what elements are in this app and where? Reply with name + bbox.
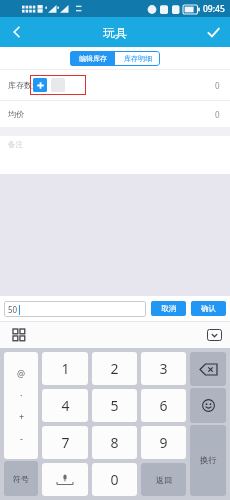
staticText: 2 (110, 359, 119, 378)
staticText: 8 (110, 433, 119, 452)
button[interactable]: 符号 (4, 461, 38, 496)
button[interactable]: 3 (141, 352, 186, 385)
staticText: - (20, 432, 23, 444)
button[interactable]: Emoji (190, 388, 226, 423)
button[interactable]: 50 (4, 301, 146, 317)
button[interactable]: Keyboard layouts (9, 325, 29, 345)
button[interactable]: 1 (42, 352, 88, 385)
staticText: 编辑库存 (79, 54, 107, 63)
button[interactable]: 8 (92, 426, 137, 459)
staticText: 0 (215, 109, 220, 120)
staticText: 返回 (156, 475, 172, 485)
button[interactable]: 5 (92, 389, 137, 422)
staticText: 备注 (8, 140, 23, 149)
button[interactable]: 均价 (0, 101, 230, 127)
button[interactable]: Confirm (196, 17, 230, 47)
staticText: 玩具 (103, 25, 127, 40)
button[interactable]: 库存数量 (0, 70, 230, 100)
button[interactable]: Space (42, 463, 88, 496)
button[interactable]: 库存明细 (115, 51, 160, 66)
staticText: 3 (159, 359, 168, 378)
staticText: 取消 (161, 304, 176, 313)
button[interactable]: 确认 (191, 301, 226, 316)
button[interactable]: Add (33, 78, 47, 92)
staticText: 库存数量 (8, 80, 40, 90)
button[interactable]: 9 (141, 426, 186, 459)
staticText: 换行 (200, 455, 217, 466)
staticText: · (20, 389, 23, 401)
button[interactable]: Symbols column (4, 352, 38, 459)
button[interactable]: Backspace (190, 352, 226, 386)
staticText: 9 (159, 433, 168, 452)
button[interactable]: Back (0, 17, 34, 47)
button[interactable]: 2 (92, 352, 137, 385)
staticText: 符号 (13, 474, 29, 484)
staticText: 09:45 (203, 3, 225, 15)
staticText: 确认 (201, 304, 216, 313)
button[interactable]: 取消 (151, 301, 186, 316)
staticText: 均价 (8, 109, 24, 119)
button[interactable]: 编辑库存 (70, 51, 115, 66)
staticText: 4 (61, 396, 70, 415)
staticText: 库存明细 (124, 54, 152, 63)
button[interactable]: Hide keyboard (207, 329, 222, 341)
button[interactable]: 换行 (190, 425, 226, 496)
staticText: 5 (110, 396, 119, 415)
staticText: 0 (110, 470, 119, 489)
staticText: + (19, 410, 25, 422)
staticText: 0 (215, 80, 220, 91)
button[interactable]: 0 (92, 463, 137, 496)
button[interactable]: 4 (42, 389, 88, 422)
button[interactable]: 7 (42, 426, 88, 459)
staticText: 6 (159, 396, 168, 415)
button[interactable]: 返回 (141, 463, 186, 496)
staticText: 7 (61, 433, 70, 452)
staticText: 50 (8, 304, 18, 315)
staticText: 1 (61, 359, 70, 378)
button[interactable]: 6 (141, 389, 186, 422)
staticText: @ (17, 367, 26, 379)
